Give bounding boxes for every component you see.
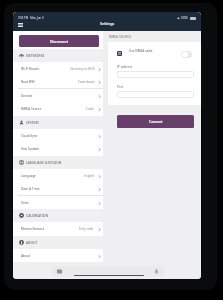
staticText: Use NMEA cable — [129, 49, 153, 53]
staticText: NMEA SOURCE — [109, 35, 132, 39]
staticText: Hub Update — [21, 147, 40, 151]
staticText: English — [84, 174, 95, 178]
staticText: LANGUAGE & REGION — [26, 160, 62, 165]
button[interactable]: Open navigation menu — [16, 21, 24, 29]
staticText: Units — [21, 201, 29, 205]
staticText: SYSTEM — [26, 120, 39, 125]
staticText: Motion Sensors — [21, 227, 45, 231]
staticText: Cloud Sync — [21, 134, 38, 138]
button[interactable]: Use NMEA cable — [108, 42, 201, 63]
button[interactable]: About — [13, 249, 103, 263]
button[interactable] — [117, 91, 194, 98]
staticText: Wi-Fi Router — [21, 67, 40, 71]
button[interactable]: Disconnect — [19, 35, 99, 47]
button[interactable]: Keyboard — [57, 269, 62, 274]
staticText: CALIBRATION — [26, 213, 49, 218]
button[interactable] — [117, 71, 194, 78]
staticText: Boat WiFi — [21, 80, 36, 84]
button[interactable]: Devices — [13, 89, 103, 103]
staticText: NMEA Source — [21, 107, 42, 111]
staticText: 100% — [181, 16, 188, 20]
button[interactable]: Date & Time — [13, 182, 103, 196]
staticText: Secretary to BHD — [70, 67, 95, 71]
button[interactable]: Wi-Fi Router — [13, 62, 103, 76]
staticText: Cable — [86, 107, 95, 111]
staticText: IP address — [117, 65, 133, 69]
button[interactable]: Connect — [117, 115, 194, 128]
button[interactable]: Microphone — [154, 269, 159, 274]
staticText: NETWORKS — [26, 53, 45, 58]
staticText: ABOUT — [26, 240, 38, 245]
staticText: Connect — [149, 119, 163, 124]
staticText: 7:55 PM Mon, Jan 2 — [18, 16, 44, 20]
staticText: Devices — [21, 94, 33, 98]
staticText: Language — [21, 174, 36, 178]
button[interactable]: Hub Update — [13, 142, 103, 156]
staticText: Settings — [100, 21, 115, 26]
staticText: Fully calib. — [79, 227, 95, 231]
button[interactable]: Motion Sensors — [13, 222, 103, 236]
button[interactable]: Language — [13, 169, 103, 183]
staticText: Date & Time — [21, 187, 40, 191]
staticText: Port — [117, 85, 124, 89]
button[interactable]: Units — [13, 196, 103, 210]
staticText: Smartboats — [78, 80, 95, 84]
button[interactable]: Use NMEA cable — [181, 51, 192, 58]
staticText: About — [21, 254, 31, 258]
button[interactable]: Boat WiFi — [13, 75, 103, 89]
staticText: Disconnect — [50, 39, 68, 44]
button[interactable]: Cloud Sync — [13, 129, 103, 143]
button[interactable]: NMEA Source — [13, 102, 103, 116]
